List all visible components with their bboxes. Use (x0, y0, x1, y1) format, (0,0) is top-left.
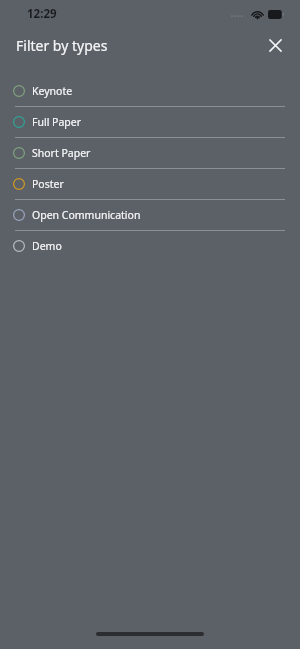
staticText: Filter by types (16, 36, 108, 55)
staticText: Demo (32, 239, 62, 253)
staticText: Open Communication (32, 208, 141, 222)
button[interactable]: Open Communication (0, 200, 300, 230)
button[interactable]: Close (260, 30, 290, 60)
staticText: 12:29 (27, 6, 57, 22)
staticText: Full Paper (32, 115, 82, 129)
staticText: Keynote (32, 84, 73, 98)
button[interactable]: Keynote (0, 76, 300, 106)
button[interactable]: Demo (0, 231, 300, 261)
button[interactable]: Full Paper (0, 107, 300, 137)
button[interactable]: Short Paper (0, 138, 300, 168)
button[interactable]: Poster (0, 169, 300, 199)
staticText: Short Paper (32, 146, 91, 160)
staticText: Poster (32, 177, 64, 191)
